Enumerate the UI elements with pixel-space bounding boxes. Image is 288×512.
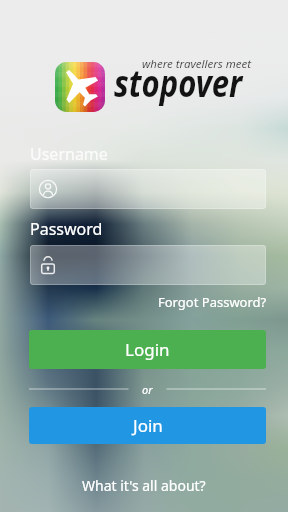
staticText: where travellers meet [142, 56, 252, 72]
staticText: Forgot Password? [158, 293, 267, 311]
staticText: What it's all about? [82, 476, 206, 495]
staticText: Username [30, 143, 108, 165]
button[interactable]: What it's all about? [79, 473, 209, 498]
staticText: or [142, 382, 153, 397]
staticText: stopover [114, 57, 242, 107]
button[interactable]: Login [29, 330, 266, 369]
button[interactable]: Join [29, 407, 266, 444]
staticText: Login [125, 338, 170, 361]
button[interactable]: Password field [30, 245, 266, 285]
button[interactable]: Forgot Password? [156, 291, 269, 313]
button[interactable]: Username field [30, 169, 266, 209]
staticText: Join [133, 414, 163, 437]
staticText: Password [30, 218, 103, 240]
